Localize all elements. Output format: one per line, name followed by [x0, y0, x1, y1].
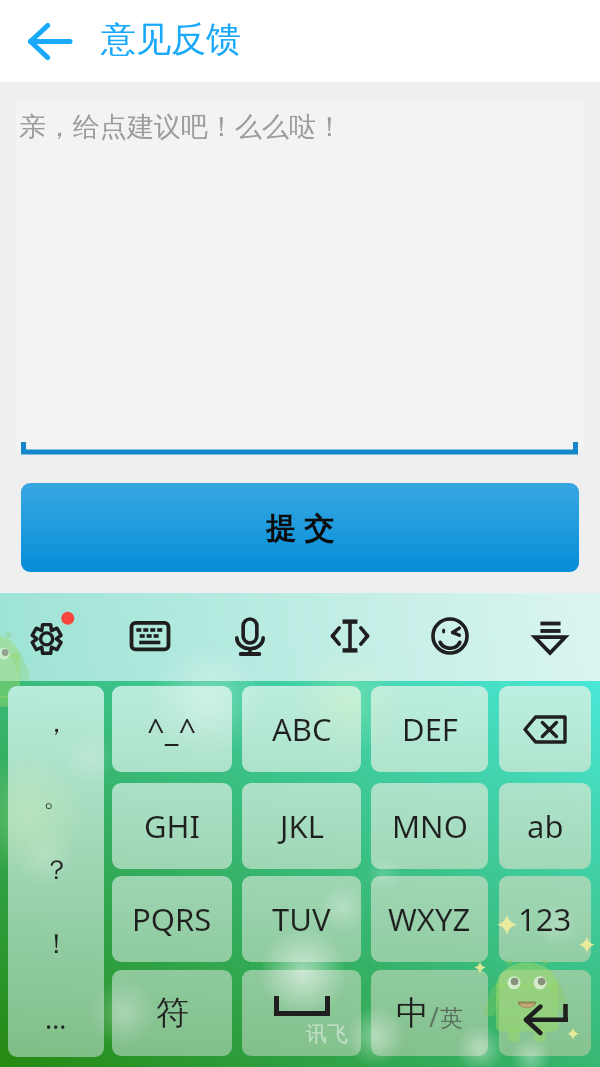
- button[interactable]: Backspace: [499, 686, 591, 772]
- staticText: 。: [43, 780, 70, 814]
- button[interactable]: Cursor control: [300, 593, 400, 679]
- button[interactable]: ABC: [242, 686, 361, 772]
- staticText: 提 交: [266, 507, 334, 548]
- button[interactable]: 123: [499, 876, 591, 962]
- button[interactable]: 提 交: [21, 483, 579, 572]
- staticText: PQRS: [132, 898, 212, 940]
- button[interactable]: Emoji: [400, 593, 500, 679]
- staticText: GHI: [144, 805, 201, 847]
- button[interactable]: Hide keyboard: [500, 593, 600, 679]
- staticText: /: [429, 998, 440, 1035]
- button[interactable]: ab: [499, 783, 591, 869]
- staticText: …: [45, 1000, 67, 1037]
- staticText: ABC: [272, 708, 332, 750]
- staticText: DEF: [402, 708, 458, 750]
- staticText: 亲，给点建议吧！么么哒！: [19, 110, 343, 144]
- button[interactable]: MNO: [371, 783, 488, 869]
- staticText: JKL: [280, 805, 324, 847]
- staticText: 意见反馈: [101, 17, 241, 61]
- button[interactable]: Keyboard layout: [100, 593, 200, 679]
- button[interactable]: Space: [242, 970, 361, 1056]
- staticText: ！: [43, 927, 70, 961]
- staticText: 讯飞: [306, 1021, 348, 1047]
- button[interactable]: Enter: [499, 970, 591, 1056]
- staticText: WXYZ: [388, 898, 471, 940]
- button[interactable]: TUV: [242, 876, 361, 962]
- button[interactable]: Chinese English toggle: [371, 970, 488, 1056]
- staticText: ，: [43, 706, 70, 740]
- button[interactable]: WXYZ: [371, 876, 488, 962]
- button[interactable]: 符: [112, 970, 232, 1056]
- staticText: TUV: [272, 898, 331, 940]
- staticText: 符: [156, 992, 189, 1034]
- button[interactable]: JKL: [242, 783, 361, 869]
- button[interactable]: DEF: [371, 686, 488, 772]
- staticText: ab: [527, 805, 564, 847]
- staticText: ^_^: [147, 708, 197, 750]
- button[interactable]: Settings: [0, 593, 100, 679]
- staticText: MNO: [392, 805, 468, 847]
- button[interactable]: GHI: [112, 783, 232, 869]
- button[interactable]: 亲，给点建议吧！么么哒！: [16, 100, 584, 452]
- staticText: 英: [440, 1004, 463, 1033]
- button[interactable]: Voice input: [200, 593, 300, 679]
- staticText: ？: [43, 853, 70, 887]
- staticText: 123: [518, 898, 572, 940]
- button[interactable]: PQRS: [112, 876, 232, 962]
- button[interactable]: ^_^: [112, 686, 232, 772]
- button[interactable]: Punctuation: [8, 686, 104, 1057]
- staticText: 中: [396, 992, 429, 1034]
- button[interactable]: Back: [18, 11, 80, 71]
